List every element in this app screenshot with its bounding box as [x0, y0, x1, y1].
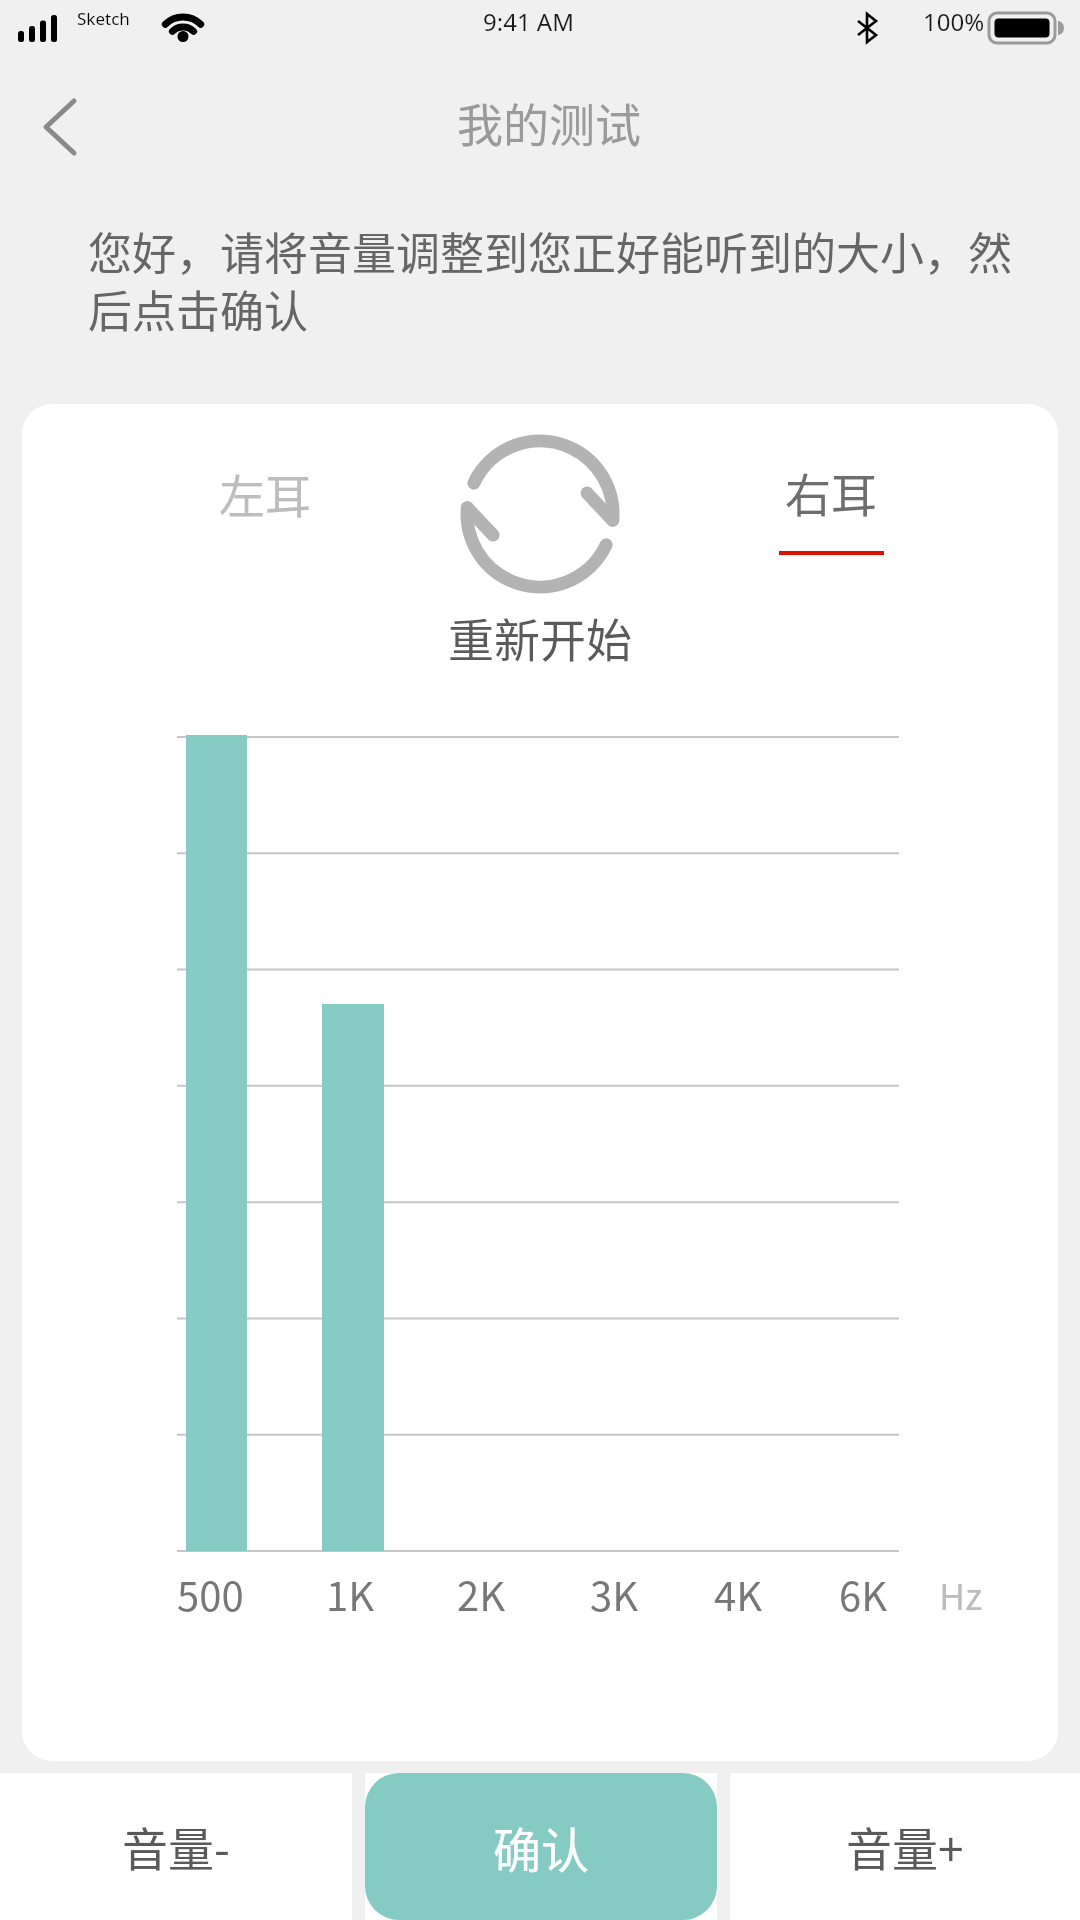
button[interactable]	[460, 434, 620, 594]
staticText: Sketch	[77, 7, 130, 30]
staticText: 2K	[457, 1565, 506, 1623]
staticText: 右耳	[785, 459, 877, 526]
staticText: 重新开始	[448, 604, 632, 671]
staticText: 1K	[326, 1565, 375, 1623]
button[interactable]	[30, 95, 90, 159]
button[interactable]: 左耳	[165, 438, 365, 548]
staticText: 9:41 AM	[483, 5, 574, 38]
button[interactable]: 右耳	[731, 437, 931, 547]
button[interactable]: 音量+	[730, 1773, 1080, 1920]
staticText: 500	[177, 1565, 244, 1623]
staticText: 您好，请将音量调整到您正好能听到的大小，然 后点击确认	[88, 219, 1012, 341]
staticText: 3K	[590, 1565, 639, 1623]
staticText: 6K	[839, 1565, 888, 1623]
staticText: 4K	[714, 1565, 763, 1623]
staticText: 音量+	[846, 1813, 964, 1880]
staticText: 100%	[923, 5, 985, 38]
staticText: 确认	[493, 1812, 590, 1882]
staticText: Hz	[939, 1568, 983, 1620]
staticText: 左耳	[219, 460, 311, 527]
staticText: 音量-	[122, 1813, 230, 1880]
button[interactable]: 确认	[365, 1773, 717, 1920]
staticText: 我的测试	[457, 89, 641, 156]
button[interactable]: 重新开始	[240, 582, 840, 692]
button[interactable]: 音量-	[0, 1773, 352, 1920]
